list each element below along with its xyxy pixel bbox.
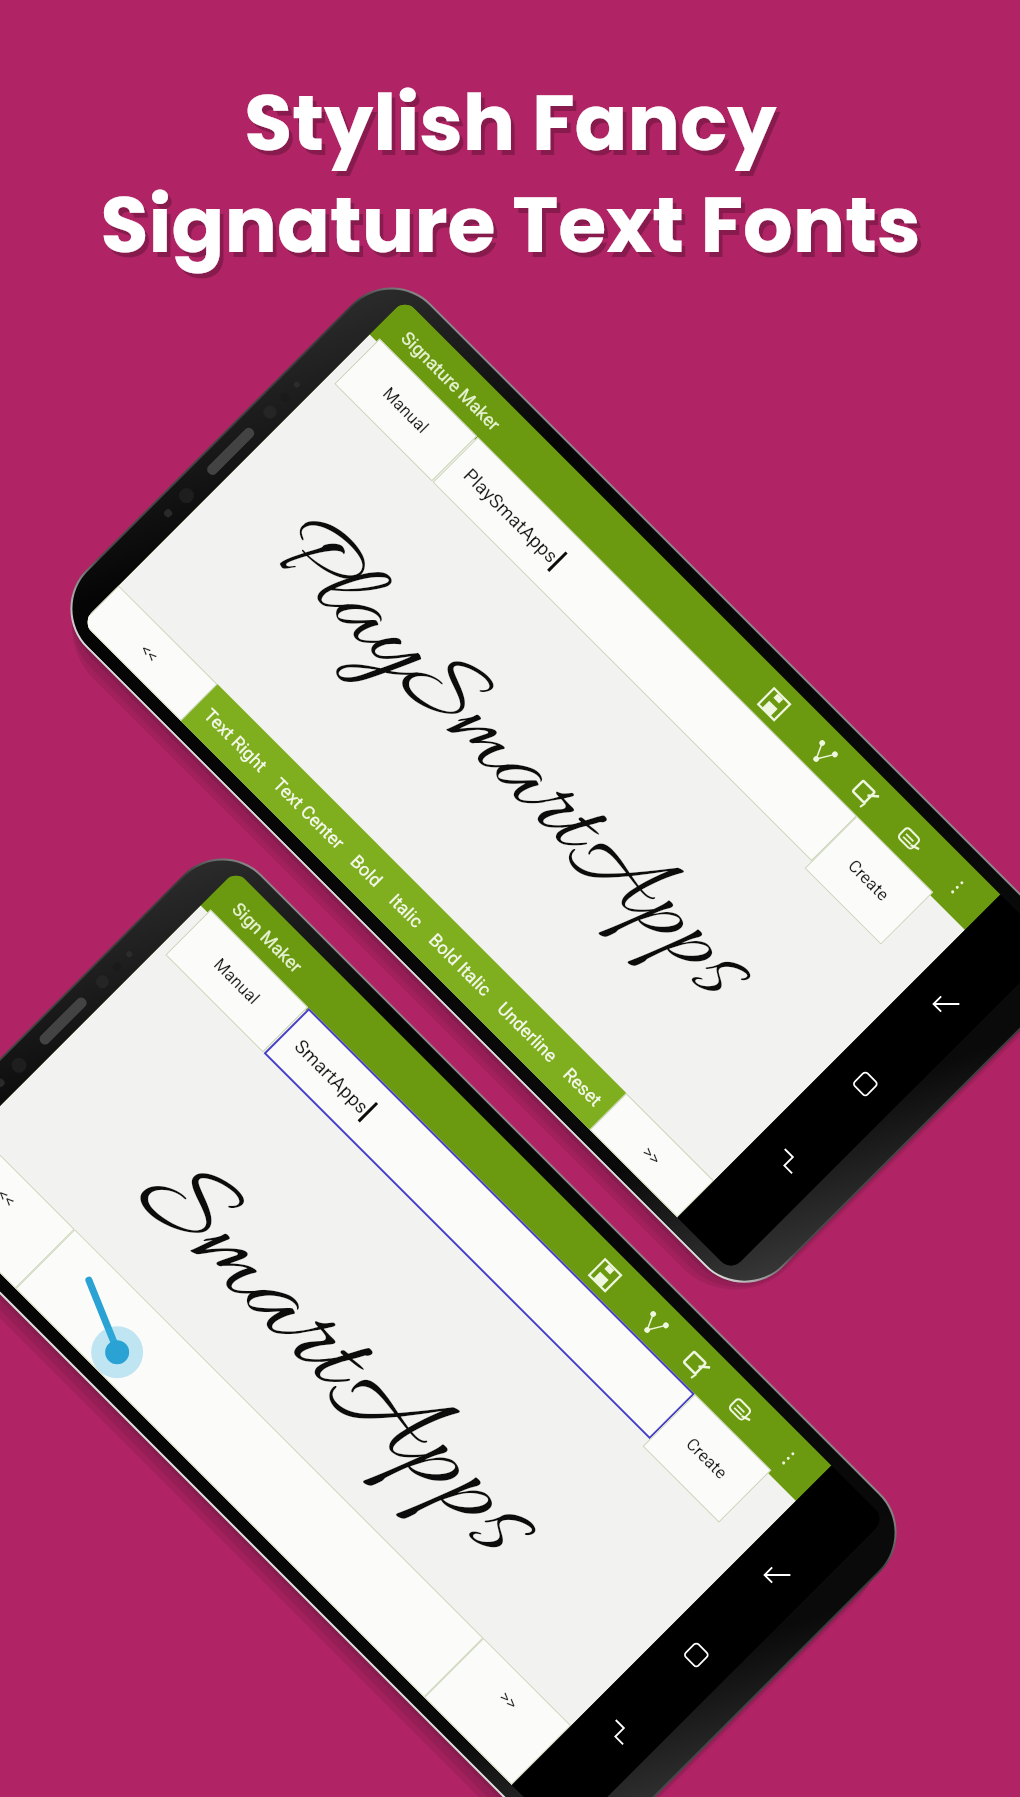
button[interactable]: Back — [911, 969, 979, 1037]
button[interactable]: Italic — [385, 889, 428, 932]
button[interactable]: Save — [744, 674, 804, 733]
staticText: Create — [844, 855, 894, 905]
staticText: Sign Maker — [228, 898, 307, 977]
staticText: SmartApps — [97, 1124, 570, 1597]
staticText: Manual — [379, 383, 433, 437]
button[interactable]: Underline — [493, 998, 562, 1066]
button[interactable]: Bold — [346, 850, 387, 891]
button[interactable]: Share — [794, 723, 853, 783]
button[interactable]: Create — [804, 816, 933, 945]
staticText: Signature Text Fonts — [104, 175, 925, 284]
button[interactable]: Save — [575, 1245, 635, 1304]
staticText: Stylish Fancy — [244, 68, 777, 177]
staticText: PlaySmartApps — [235, 489, 780, 1034]
staticText: Stylish Fancy — [248, 73, 781, 182]
button[interactable]: Text Center — [269, 773, 349, 853]
button[interactable]: >> — [424, 1638, 571, 1785]
button[interactable]: Erase — [881, 810, 940, 870]
button[interactable]: Back — [742, 1540, 810, 1608]
staticText: >> — [638, 1142, 665, 1169]
button[interactable]: << — [82, 585, 218, 721]
staticText: << — [0, 1185, 20, 1212]
button[interactable]: Reset — [559, 1063, 606, 1111]
staticText: Signature Maker — [397, 327, 505, 435]
button[interactable]: Text Right — [200, 704, 272, 776]
button[interactable]: Image — [667, 1336, 726, 1395]
staticText: Signature Text Fonts — [100, 170, 921, 279]
button[interactable]: >> — [590, 1093, 714, 1218]
button[interactable]: Home — [662, 1620, 730, 1688]
button[interactable]: Bold Italic — [425, 929, 496, 1000]
button[interactable]: Manual — [165, 910, 308, 1052]
button[interactable]: Home — [831, 1049, 899, 1117]
button[interactable]: More options — [759, 1428, 818, 1487]
button[interactable]: Recent apps — [585, 1697, 653, 1765]
staticText: Create — [682, 1434, 732, 1483]
button[interactable]: Create — [643, 1394, 771, 1523]
button[interactable]: More options — [928, 857, 987, 916]
button[interactable]: << — [0, 1130, 75, 1289]
button[interactable]: Erase — [712, 1381, 771, 1441]
staticText: PlaySmatApps — [459, 464, 563, 567]
staticText: SmartApps — [290, 1035, 373, 1117]
button[interactable]: Image — [836, 765, 895, 824]
button[interactable]: Manual — [334, 339, 477, 481]
staticText: Manual — [210, 954, 264, 1008]
button[interactable]: Recent apps — [754, 1126, 822, 1194]
button[interactable]: Share — [625, 1294, 684, 1354]
staticText: >> — [495, 1687, 522, 1714]
staticText: << — [136, 640, 163, 667]
